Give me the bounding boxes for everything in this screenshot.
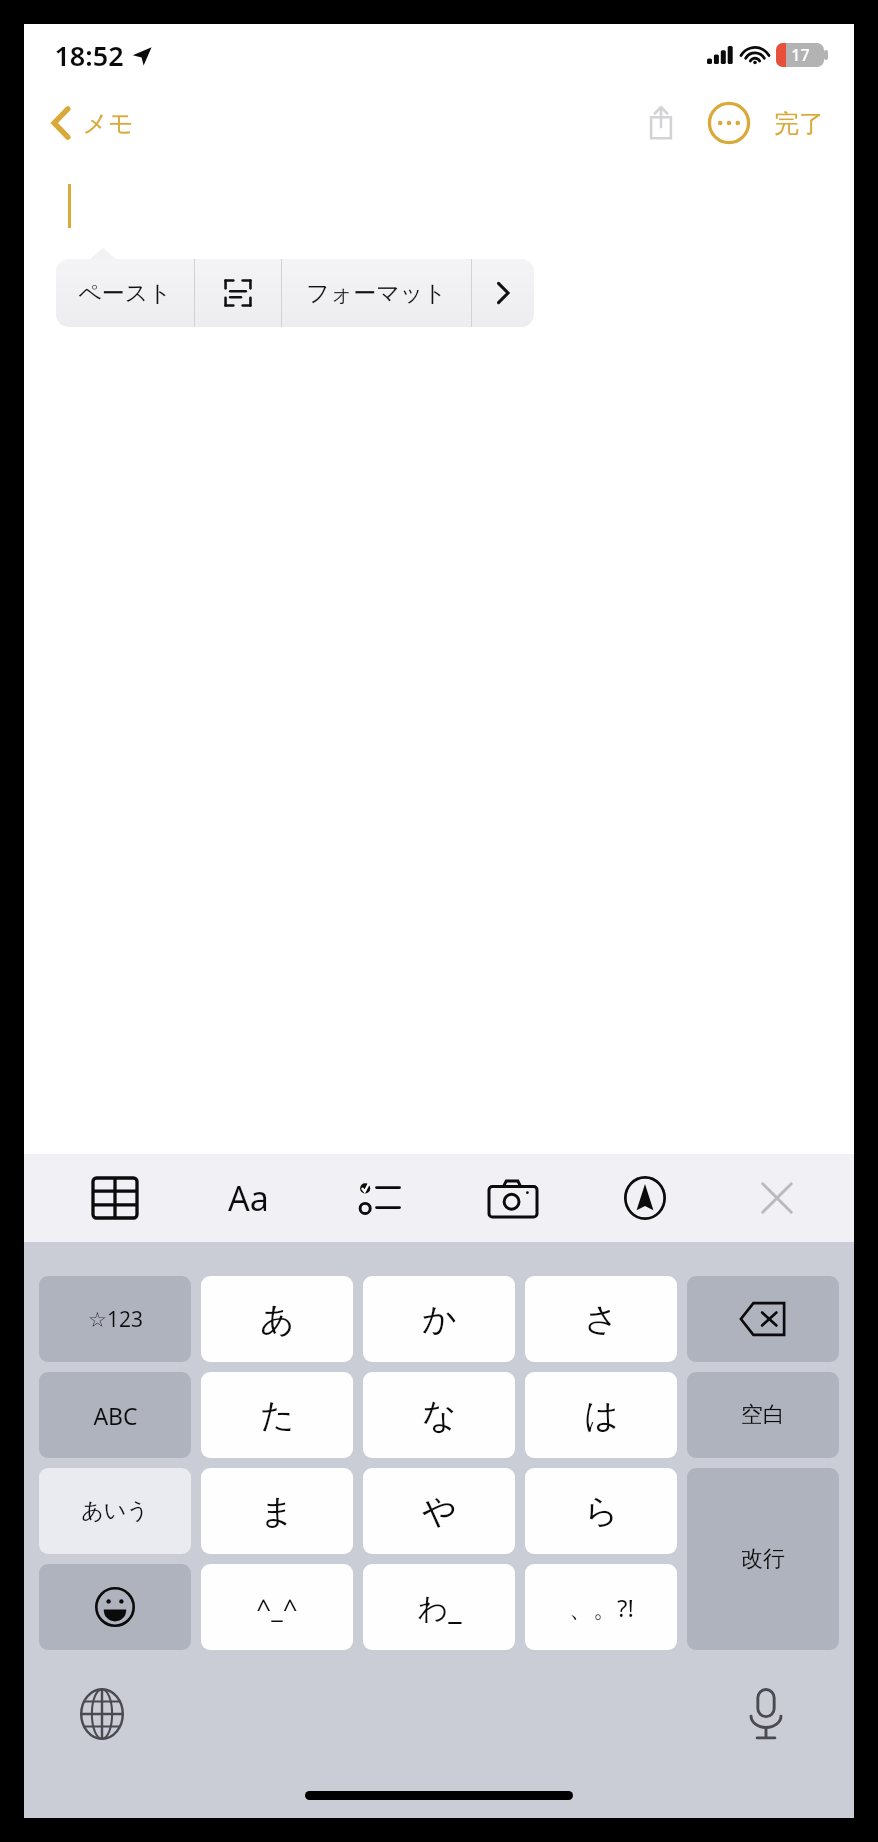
button[interactable]: Table bbox=[82, 1165, 148, 1231]
staticText: メモ bbox=[82, 108, 134, 139]
button[interactable]: フォーマット bbox=[282, 259, 471, 327]
button[interactable]: 改行 bbox=[687, 1468, 839, 1650]
staticText: ま bbox=[260, 1490, 295, 1533]
staticText: 18:52 bbox=[54, 37, 124, 74]
staticText: や bbox=[422, 1490, 457, 1533]
button[interactable]: Share bbox=[634, 96, 688, 150]
staticText: Aa bbox=[228, 1175, 269, 1221]
button[interactable]: メモ bbox=[42, 101, 144, 145]
staticText: フォーマット bbox=[306, 279, 447, 308]
staticText: 改行 bbox=[741, 1545, 785, 1573]
button[interactable]: Close keyboard bbox=[744, 1165, 810, 1231]
button[interactable]: Delete bbox=[687, 1276, 839, 1362]
button[interactable]: Dictation bbox=[734, 1682, 798, 1746]
staticText: ABC bbox=[93, 1400, 138, 1431]
staticText: さ bbox=[584, 1298, 619, 1341]
button[interactable]: Format text bbox=[215, 1165, 281, 1231]
staticText: あいう bbox=[81, 1497, 149, 1525]
staticText: な bbox=[422, 1394, 457, 1437]
staticText: ☆123 bbox=[88, 1305, 143, 1334]
button[interactable]: か bbox=[363, 1276, 515, 1362]
button[interactable]: ら bbox=[525, 1468, 677, 1554]
button[interactable]: Emoji bbox=[39, 1564, 191, 1650]
button[interactable]: ペースト bbox=[56, 259, 194, 327]
button[interactable]: Markup bbox=[612, 1165, 678, 1231]
button[interactable]: More bbox=[702, 96, 756, 150]
button[interactable]: ^_^ bbox=[201, 1564, 353, 1650]
staticText: ^_^ bbox=[256, 1590, 298, 1625]
button[interactable]: ABC bbox=[39, 1372, 191, 1458]
button[interactable]: 空白 bbox=[687, 1372, 839, 1458]
button[interactable]: Camera bbox=[480, 1165, 546, 1231]
staticText: ペースト bbox=[78, 279, 172, 308]
staticText: 空白 bbox=[741, 1401, 785, 1429]
button[interactable]: ☆123 bbox=[39, 1276, 191, 1362]
staticText: 完了 bbox=[774, 108, 824, 139]
button[interactable]: は bbox=[525, 1372, 677, 1458]
staticText: か bbox=[422, 1298, 457, 1341]
button[interactable]: わ_ bbox=[363, 1564, 515, 1650]
button[interactable]: Scan text bbox=[195, 259, 281, 327]
button[interactable]: 、。?! bbox=[525, 1564, 677, 1650]
button[interactable]: な bbox=[363, 1372, 515, 1458]
staticText: わ_ bbox=[417, 1587, 462, 1628]
button[interactable]: た bbox=[201, 1372, 353, 1458]
button[interactable]: さ bbox=[525, 1276, 677, 1362]
button[interactable]: 完了 bbox=[766, 102, 832, 145]
staticText: 17 bbox=[791, 44, 810, 66]
staticText: あ bbox=[260, 1298, 295, 1341]
button[interactable]: Change keyboard bbox=[70, 1682, 134, 1746]
staticText: 、。?! bbox=[569, 1591, 634, 1624]
button[interactable]: ま bbox=[201, 1468, 353, 1554]
staticText: ら bbox=[584, 1490, 619, 1533]
button[interactable]: あいう bbox=[39, 1468, 191, 1554]
staticText: は bbox=[584, 1394, 619, 1437]
staticText: た bbox=[260, 1394, 295, 1437]
button[interactable]: More options bbox=[472, 259, 534, 327]
button[interactable]: Checklist bbox=[348, 1165, 414, 1231]
button[interactable]: や bbox=[363, 1468, 515, 1554]
button[interactable]: あ bbox=[201, 1276, 353, 1362]
